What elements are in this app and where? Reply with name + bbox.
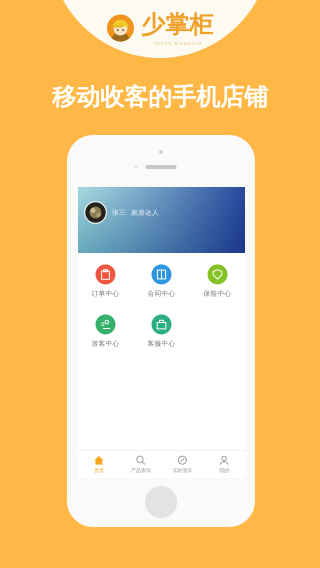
staticText: 保险中心 [203,289,231,298]
staticText: 产品查询 [131,467,151,474]
button[interactable]: 实时查询 [161,451,203,478]
button[interactable]: 首页 [78,451,120,478]
staticText: 订单中心 [91,289,119,298]
button[interactable]: 产品查询 [120,451,162,478]
button[interactable]: 客服中心 [134,312,189,350]
staticText: 旅游达人 [131,208,159,217]
staticText: 游客中心 [91,339,119,348]
staticText: 实时查询 [172,467,192,474]
staticText: 客服中心 [147,339,175,348]
button[interactable]: 我的 [203,451,245,478]
button[interactable]: 合同中心 [134,262,189,300]
staticText: 合同中心 [147,289,175,298]
staticText: 移动收客的手机店铺 [52,82,268,112]
staticText: Y O U N G M A N A G E R [153,41,200,46]
button[interactable]: 保险中心 [190,262,245,300]
staticText: 张三 [112,208,126,217]
staticText: 我的 [219,467,229,474]
button[interactable]: 订单中心 [78,262,133,300]
staticText: 少掌柜 [141,10,213,40]
button[interactable]: 游客中心 [78,312,133,350]
staticText: 首页 [94,467,104,474]
